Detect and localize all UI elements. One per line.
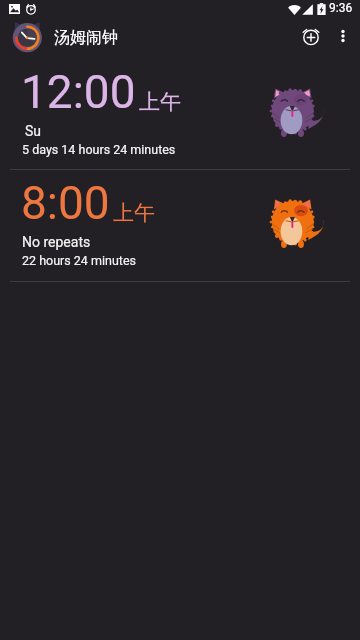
button[interactable]: More options	[323, 16, 360, 56]
staticText: 汤姆闹钟	[54, 28, 118, 48]
button[interactable]: 12:00	[0, 57, 360, 169]
staticText: 5 days 14 hours 24 minutes	[22, 142, 176, 157]
staticText: 22 hours 24 minutes	[22, 253, 136, 268]
staticText: 9:36	[329, 1, 353, 15]
staticText: 上午	[113, 200, 155, 226]
staticText: 8:00	[21, 176, 110, 230]
staticText: No repeats	[22, 234, 91, 250]
button[interactable]: Add alarm	[291, 16, 331, 56]
staticText: 12:00	[21, 65, 136, 119]
staticText: Su	[25, 123, 42, 139]
button[interactable]: 8:00	[0, 168, 360, 280]
staticText: 上午	[139, 89, 181, 115]
